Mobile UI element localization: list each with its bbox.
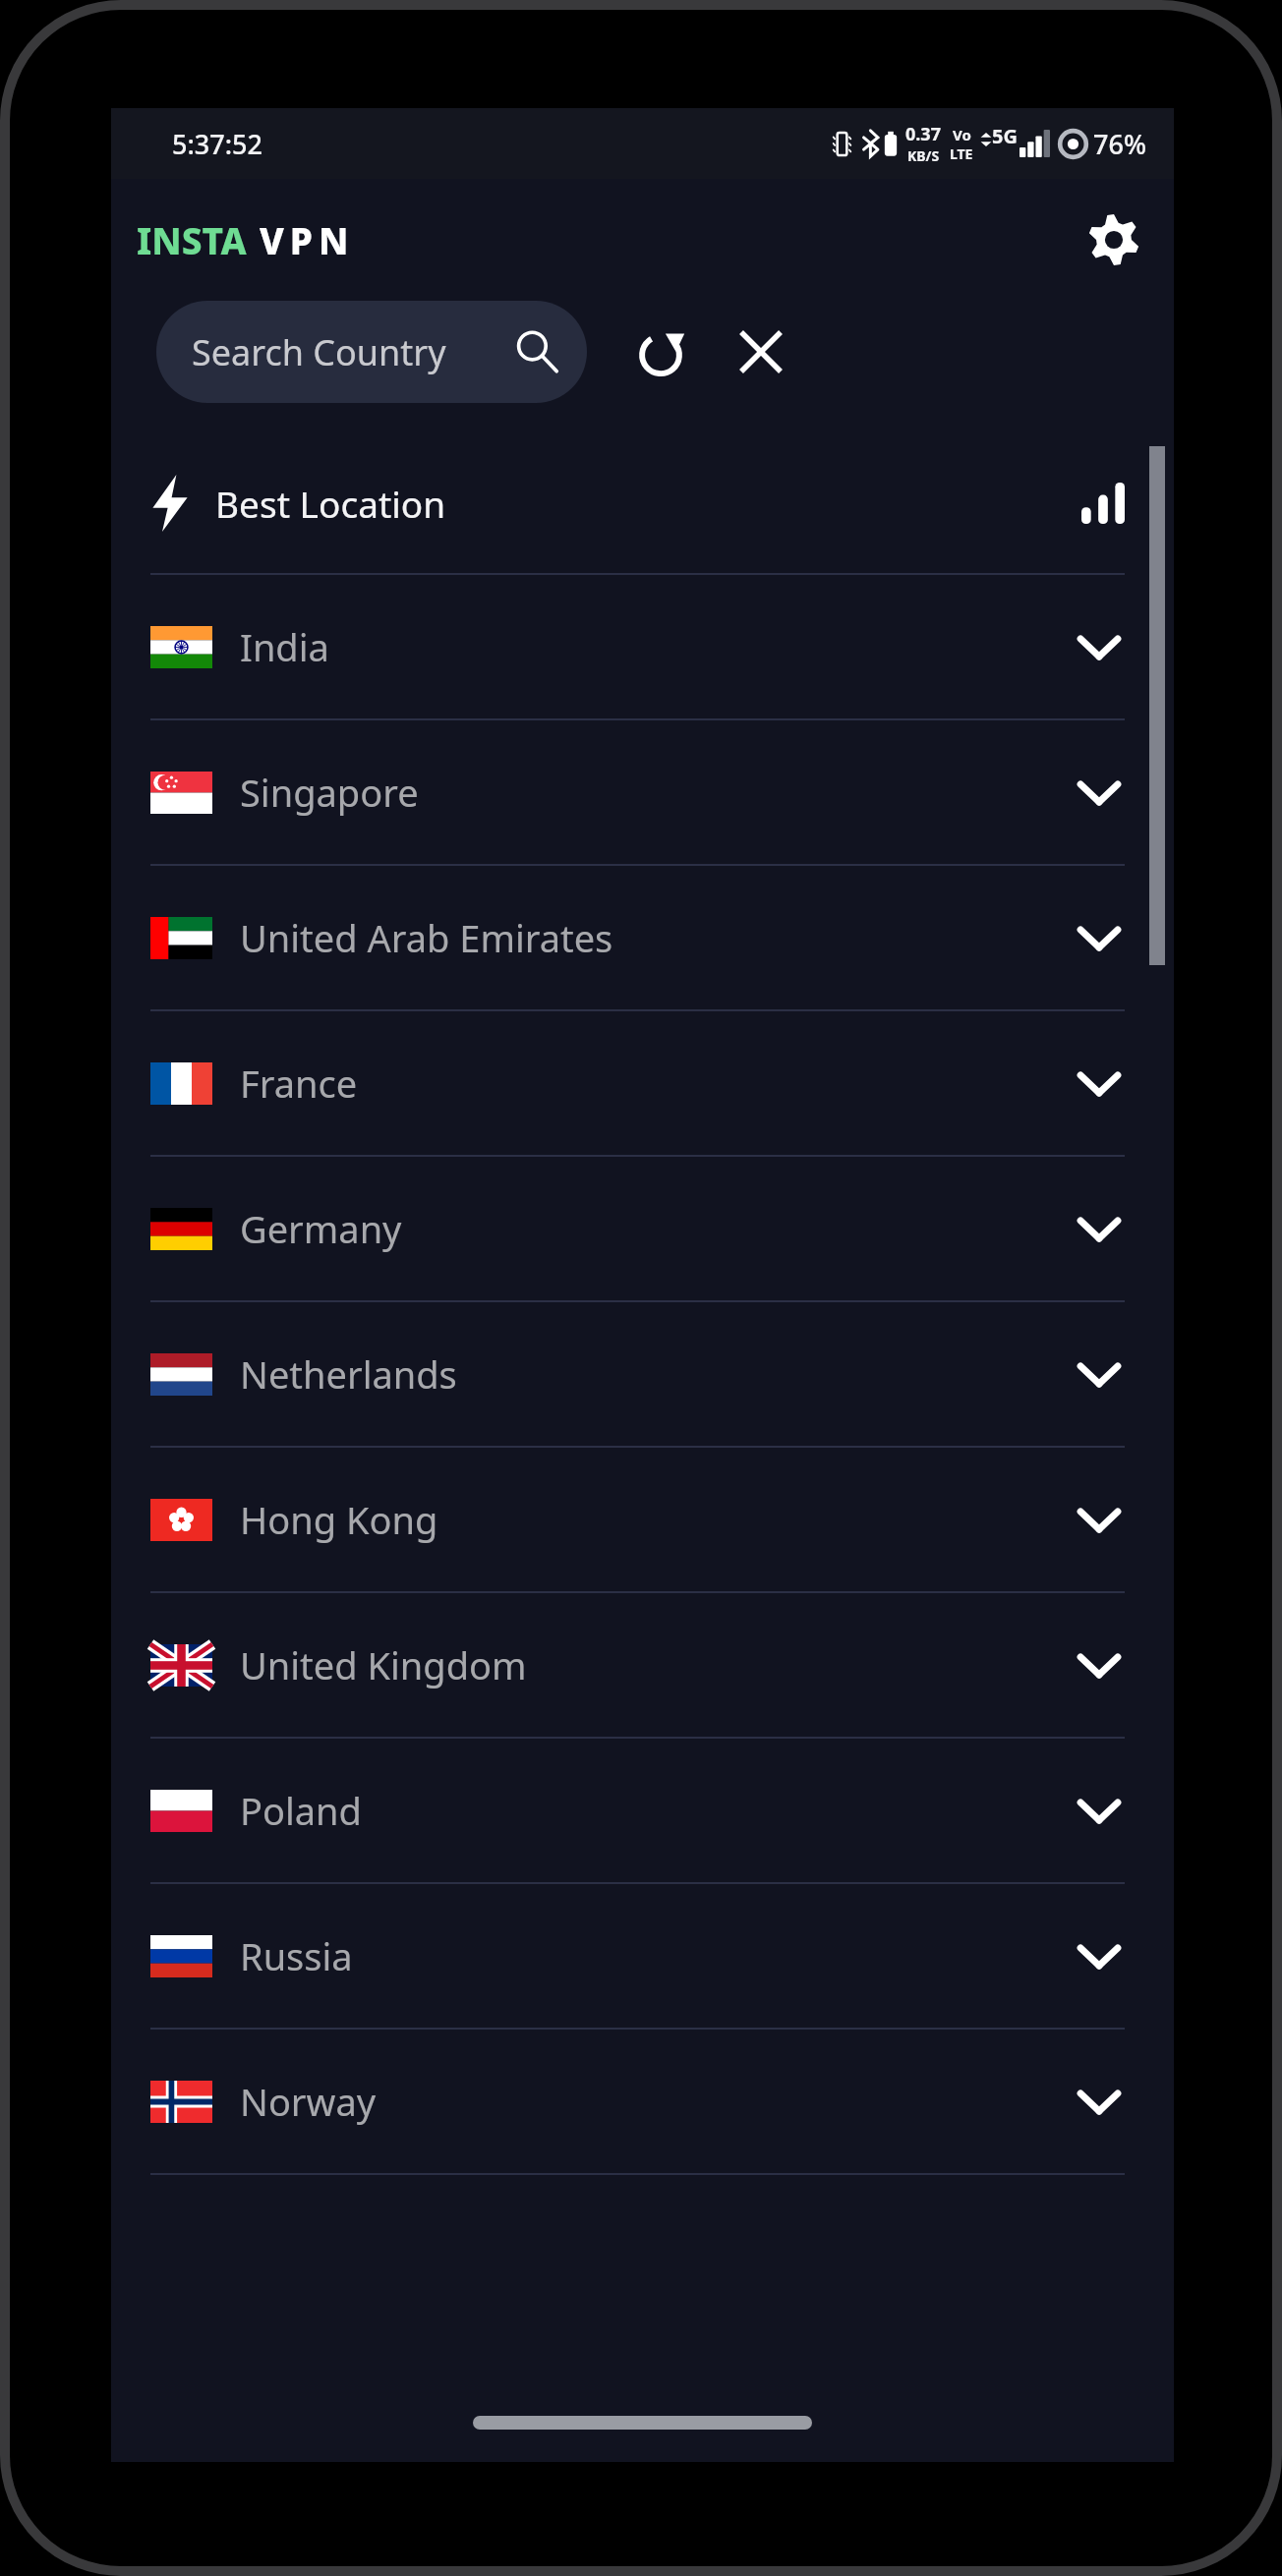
button[interactable]: Germany [111, 1157, 1174, 1300]
button[interactable]: Settings [1081, 207, 1146, 272]
staticText: Netherlands [240, 1348, 1074, 1400]
staticText: Russia [240, 1930, 1074, 1981]
button[interactable]: Refresh [624, 315, 697, 388]
other: Expand Norway [1074, 2076, 1125, 2127]
other: Expand Hong Kong [1074, 1494, 1125, 1545]
staticText: Search Country [192, 328, 446, 376]
button[interactable]: Netherlands [111, 1302, 1174, 1446]
button[interactable]: Close [725, 315, 797, 388]
staticText: 0.37 [905, 122, 941, 146]
button[interactable]: Singapore [111, 720, 1174, 864]
staticText: Germany [240, 1203, 1074, 1254]
button[interactable]: Russia [111, 1884, 1174, 2028]
staticText: Norway [240, 2076, 1074, 2127]
staticText: LTE [950, 144, 973, 163]
button[interactable]: France [111, 1011, 1174, 1155]
button[interactable]: United Kingdom [111, 1593, 1174, 1737]
staticText: France [240, 1058, 1074, 1109]
staticText: Singapore [240, 767, 1074, 818]
staticText: KB/S [907, 146, 940, 165]
staticText: Poland [240, 1785, 1074, 1836]
other: Expand Singapore [1074, 767, 1125, 818]
staticText: INSTA [137, 215, 247, 264]
other: Expand India [1074, 621, 1125, 672]
other: Expand Netherlands [1074, 1348, 1125, 1400]
other: Expand France [1074, 1058, 1125, 1109]
other: Expand Germany [1074, 1203, 1125, 1254]
staticText: India [240, 621, 1074, 672]
button[interactable]: Poland [111, 1739, 1174, 1882]
other: Expand United Arab Emirates [1074, 912, 1125, 963]
staticText: Vo [953, 125, 971, 144]
button[interactable]: India [111, 575, 1174, 718]
other: Expand United Kingdom [1074, 1639, 1125, 1690]
other: Expand Russia [1074, 1930, 1125, 1981]
staticText: United Arab Emirates [240, 912, 1074, 963]
button[interactable]: United Arab Emirates [111, 866, 1174, 1009]
other: Search [512, 327, 561, 376]
staticText: 5:37:52 [172, 126, 262, 162]
staticText: Hong Kong [240, 1494, 1074, 1545]
staticText: 76% [1093, 126, 1146, 162]
staticText: Best Location [215, 479, 1081, 528]
staticText: United Kingdom [240, 1639, 1074, 1690]
staticText: 5G [992, 123, 1018, 149]
button[interactable]: Hong Kong [111, 1448, 1174, 1591]
button[interactable]: Best Location [111, 432, 1174, 573]
staticText: VPN [260, 215, 355, 264]
button[interactable]: Search Country [156, 301, 587, 403]
other: Expand Poland [1074, 1785, 1125, 1836]
button[interactable]: Norway [111, 2030, 1174, 2173]
